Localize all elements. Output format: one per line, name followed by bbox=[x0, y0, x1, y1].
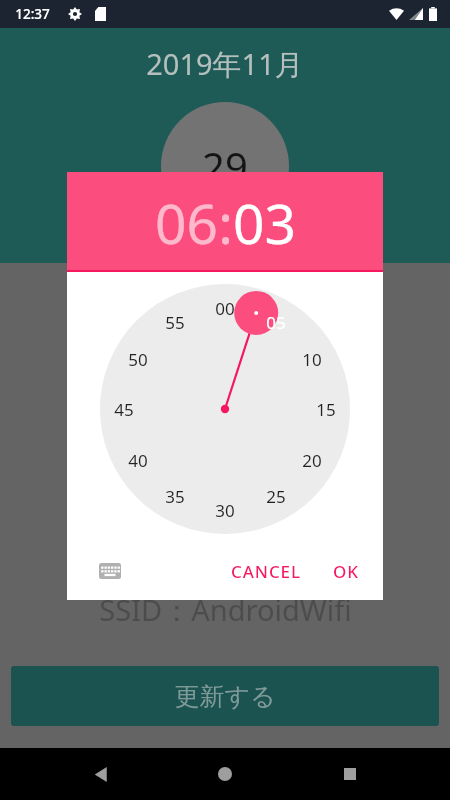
button[interactable]: 30 bbox=[205, 490, 245, 530]
button[interactable]: 20 bbox=[292, 440, 332, 480]
staticText: 25 bbox=[266, 485, 286, 508]
button[interactable]: CANCEL bbox=[221, 552, 311, 591]
staticText: 20 bbox=[302, 449, 322, 472]
staticText: 12:37 bbox=[15, 5, 50, 23]
staticText: 06 bbox=[155, 185, 218, 260]
staticText: 00 bbox=[215, 297, 235, 320]
staticText: 50 bbox=[128, 348, 148, 371]
button[interactable]: 35 bbox=[155, 476, 195, 516]
button[interactable]: 更新する bbox=[11, 666, 439, 726]
button[interactable]: Back bbox=[77, 750, 125, 798]
staticText: 2019年11月 bbox=[146, 44, 304, 84]
button[interactable]: 45 bbox=[104, 389, 144, 429]
staticText: 30 bbox=[215, 499, 235, 522]
button[interactable]: 15 bbox=[306, 389, 346, 429]
staticText: 55 bbox=[165, 311, 185, 334]
staticText: CANCEL bbox=[231, 560, 301, 583]
staticText: 40 bbox=[128, 449, 148, 472]
staticText: 29 bbox=[202, 139, 248, 193]
staticText: 15 bbox=[316, 398, 336, 421]
button[interactable]: Switch to text input mode bbox=[93, 554, 127, 588]
staticText: 35 bbox=[165, 485, 185, 508]
button[interactable]: 03 bbox=[233, 185, 296, 260]
button[interactable]: 25 bbox=[256, 476, 296, 516]
staticText: 更新する bbox=[174, 681, 276, 712]
staticText: 03 bbox=[233, 185, 296, 260]
button[interactable]: 40 bbox=[118, 440, 158, 480]
staticText: OK bbox=[333, 560, 359, 583]
staticText: 05 bbox=[266, 311, 286, 334]
staticText: : bbox=[218, 185, 233, 260]
button[interactable]: 55 bbox=[155, 302, 195, 342]
button[interactable]: Recent apps bbox=[326, 750, 374, 798]
button[interactable]: 50 bbox=[118, 339, 158, 379]
staticText: 45 bbox=[114, 398, 134, 421]
button[interactable]: 10 bbox=[292, 339, 332, 379]
button[interactable]: Home bbox=[201, 750, 249, 798]
staticText: SSID：AndroidWifi bbox=[99, 590, 352, 630]
button[interactable]: 00 bbox=[205, 288, 245, 328]
button[interactable]: OK bbox=[323, 552, 369, 591]
button[interactable]: 05 bbox=[256, 302, 296, 342]
button[interactable]: 06 bbox=[155, 185, 218, 260]
staticText: 10 bbox=[302, 348, 322, 371]
